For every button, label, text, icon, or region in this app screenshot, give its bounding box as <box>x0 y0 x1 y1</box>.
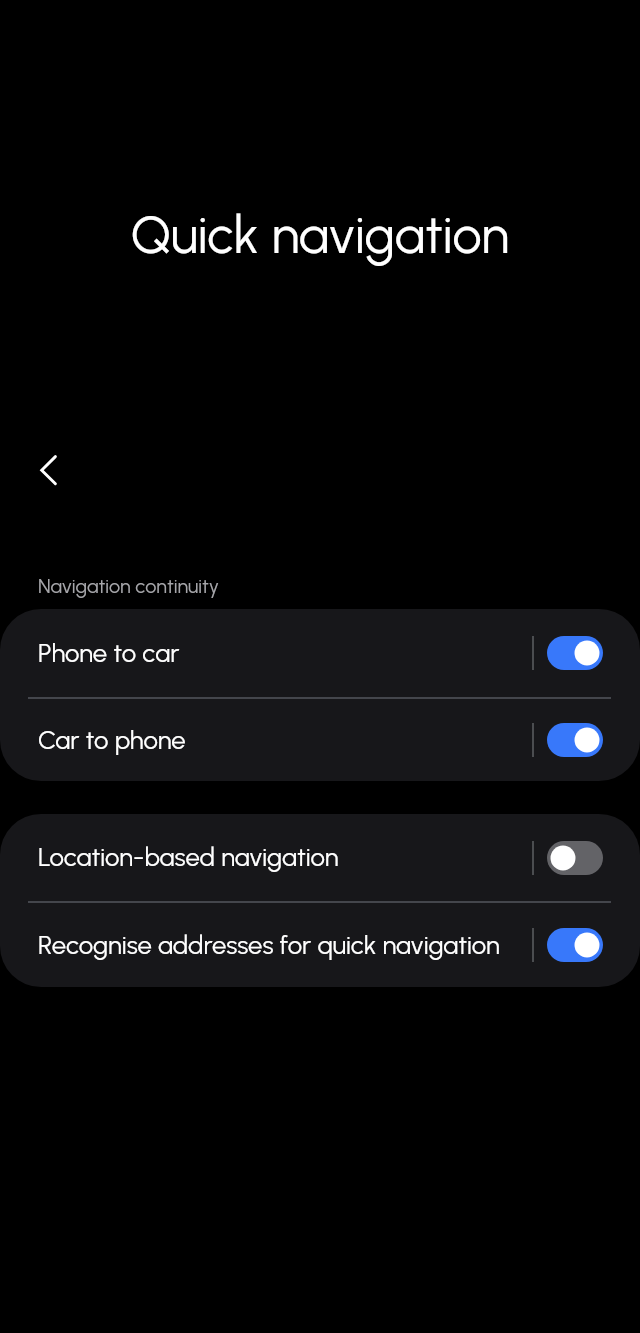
staticText: Phone to car <box>38 638 180 669</box>
button[interactable]: Back <box>24 446 72 494</box>
button[interactable]: Recognise addresses for quick navigation <box>0 903 640 987</box>
button[interactable]: Location-based navigation <box>0 814 640 901</box>
button[interactable]: Switch on <box>547 636 603 670</box>
staticText: Car to phone <box>38 725 186 756</box>
button[interactable]: Phone to car <box>0 609 640 697</box>
button[interactable]: Switch on <box>547 723 603 757</box>
staticText: Recognise addresses for quick navigation <box>38 930 500 961</box>
staticText: Location-based navigation <box>38 842 339 873</box>
button[interactable]: Car to phone <box>0 699 640 781</box>
button[interactable]: Switch off <box>547 841 603 875</box>
staticText: Navigation continuity <box>38 574 219 598</box>
button[interactable]: Switch on <box>547 928 603 962</box>
staticText: Quick navigation <box>0 204 640 266</box>
